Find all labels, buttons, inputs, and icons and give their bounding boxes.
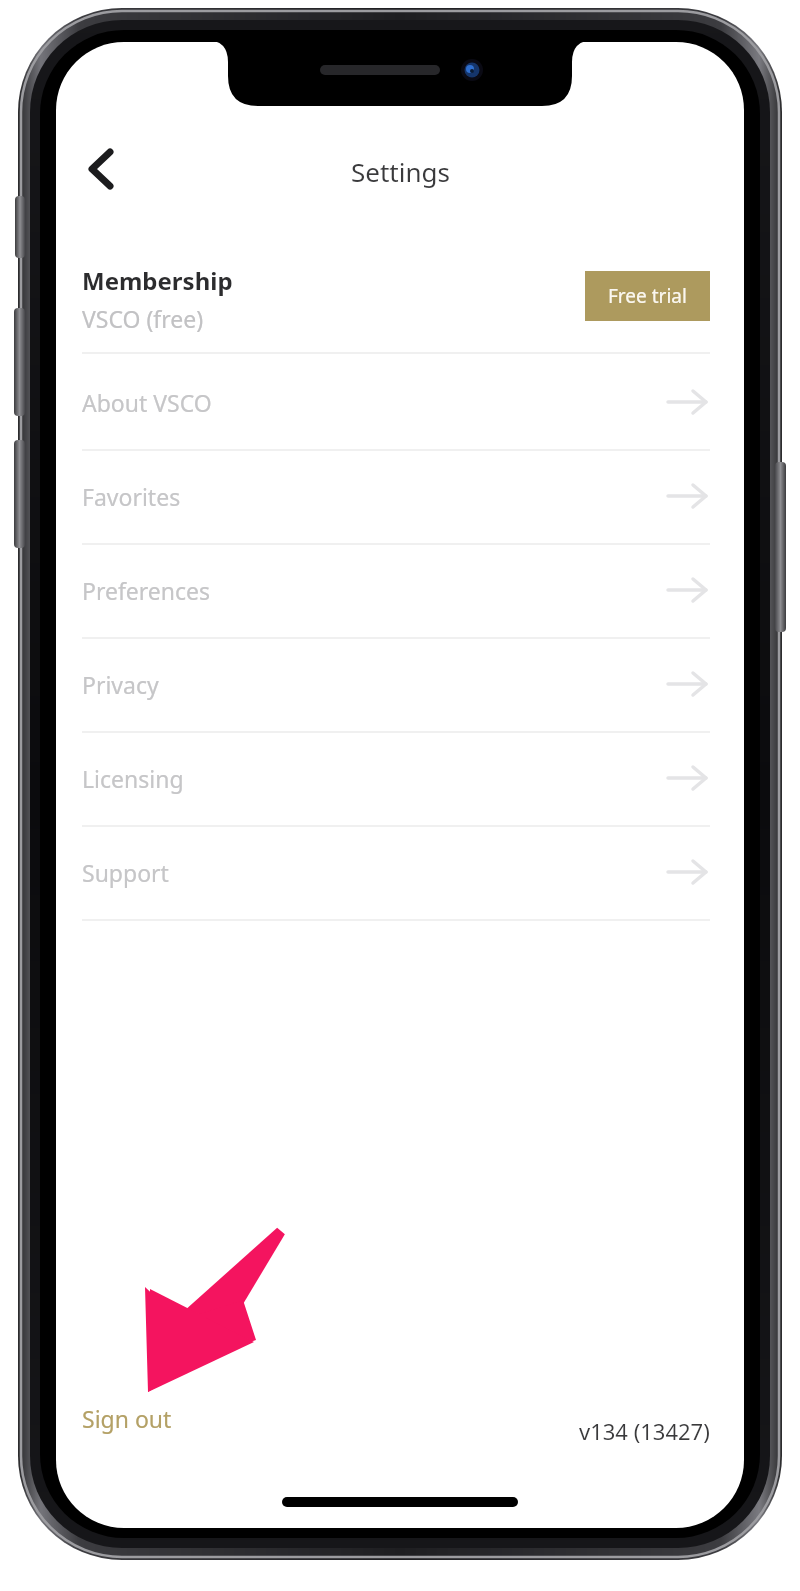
staticText: Membership (82, 264, 233, 297)
button[interactable]: Preferences (82, 552, 710, 628)
button[interactable]: Licensing (82, 740, 710, 816)
staticText: About VSCO (82, 387, 212, 418)
staticText: Licensing (82, 763, 184, 794)
staticText: Support (82, 857, 169, 888)
staticText: Free trial (608, 283, 687, 309)
staticText: Privacy (82, 669, 159, 700)
staticText: Settings (351, 154, 450, 189)
staticText: Sign out (82, 1403, 172, 1434)
button[interactable]: Favorites (82, 458, 710, 534)
button[interactable]: Sign out (82, 1396, 272, 1440)
button[interactable]: Membership (82, 262, 442, 298)
button[interactable]: Support (82, 834, 710, 910)
staticText: Favorites (82, 481, 181, 512)
staticText: VSCO (free) (82, 303, 204, 334)
button[interactable]: About VSCO (82, 364, 710, 440)
staticText: v134 (13427) (579, 1416, 710, 1446)
staticText: Preferences (82, 575, 211, 606)
button[interactable]: Back (62, 130, 138, 206)
button[interactable]: Privacy (82, 646, 710, 722)
button[interactable]: Free trial (585, 271, 710, 321)
